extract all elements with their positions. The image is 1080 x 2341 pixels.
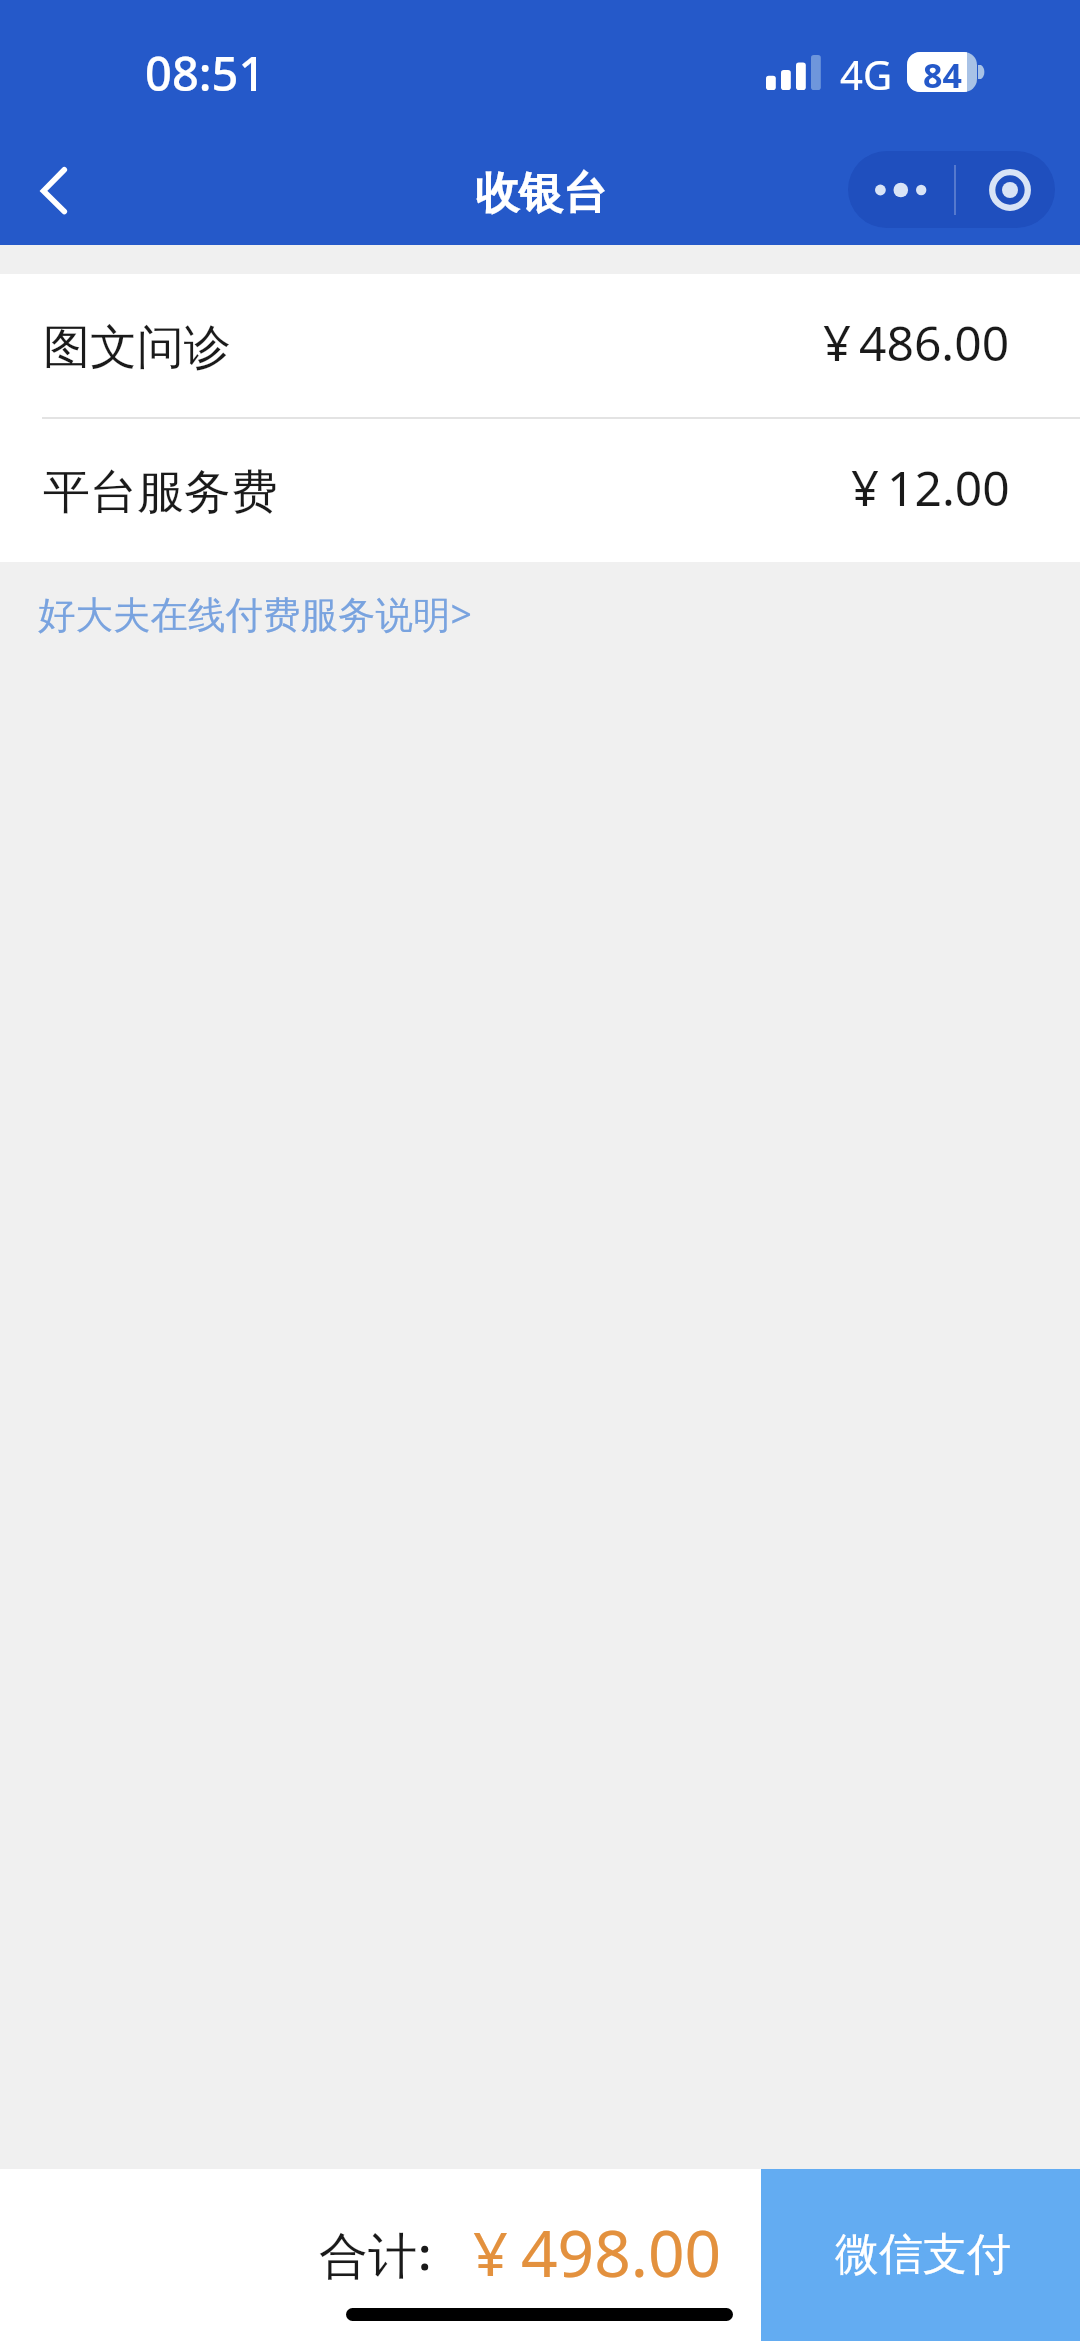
staticText: 84 [923,52,962,92]
staticText: 12.00 [887,455,1010,520]
button[interactable]: 微信支付 [761,2169,1080,2341]
staticText: 微信支付 [835,2227,1011,2282]
button[interactable]: More options [848,151,954,228]
button[interactable]: Close mini program [956,151,1055,228]
staticText: 486.00 [859,310,1010,375]
staticText: ¥ [823,309,852,376]
staticText: 好大夫在线付费服务说明> [38,588,472,639]
staticText: 合计 [319,2226,417,2288]
staticText: 图文问诊 [43,318,231,377]
staticText: ¥ [851,454,880,521]
staticText: 收银台 [475,166,607,221]
button[interactable]: Back [0,130,112,245]
button[interactable]: 好大夫在线付费服务说明> [38,588,472,639]
staticText: 平台服务费 [43,463,278,522]
staticText: 08:51 [145,41,266,105]
button[interactable]: 图文问诊 [0,274,1080,417]
button[interactable]: 平台服务费 [0,419,1080,562]
staticText: 4G [840,47,892,101]
staticText: ¥ [473,2211,508,2294]
staticText: 498.00 [521,2209,722,2296]
